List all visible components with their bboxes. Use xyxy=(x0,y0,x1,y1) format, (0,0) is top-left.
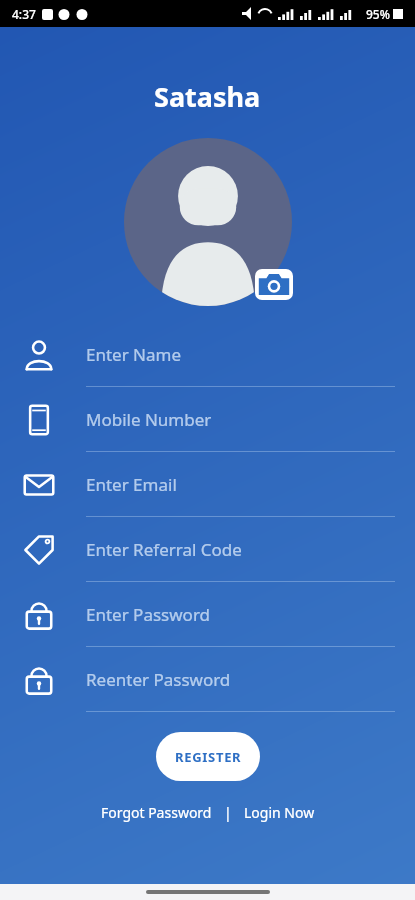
staticText: 4:37 xyxy=(12,6,36,22)
button[interactable]: Enter Password xyxy=(0,582,415,647)
staticText: Forgot Password xyxy=(101,803,212,822)
button[interactable]: REGISTER xyxy=(156,732,260,781)
button[interactable]: Reenter Password xyxy=(0,647,415,712)
button[interactable]: Login Now xyxy=(240,799,319,826)
staticText: Login Now xyxy=(244,803,315,822)
button[interactable]: Profile photo xyxy=(124,138,292,306)
staticText: REGISTER xyxy=(175,748,242,766)
staticText: 95% xyxy=(366,6,390,22)
staticText: Enter Email xyxy=(86,473,177,496)
staticText: Enter Name xyxy=(86,343,182,366)
button[interactable]: Enter Name xyxy=(0,322,415,387)
button[interactable]: Forgot Password xyxy=(97,799,216,826)
staticText: Satasha xyxy=(154,78,261,115)
staticText: Enter Referral Code xyxy=(86,538,242,561)
staticText: Enter Password xyxy=(86,603,211,626)
staticText: | xyxy=(224,803,232,822)
button[interactable]: Enter Email xyxy=(0,452,415,517)
button[interactable]: Change photo xyxy=(255,269,293,300)
button[interactable]: Enter Referral Code xyxy=(0,517,415,582)
staticText: Reenter Password xyxy=(86,668,231,691)
button[interactable]: Mobile Number xyxy=(0,387,415,452)
staticText: Mobile Number xyxy=(86,408,212,431)
